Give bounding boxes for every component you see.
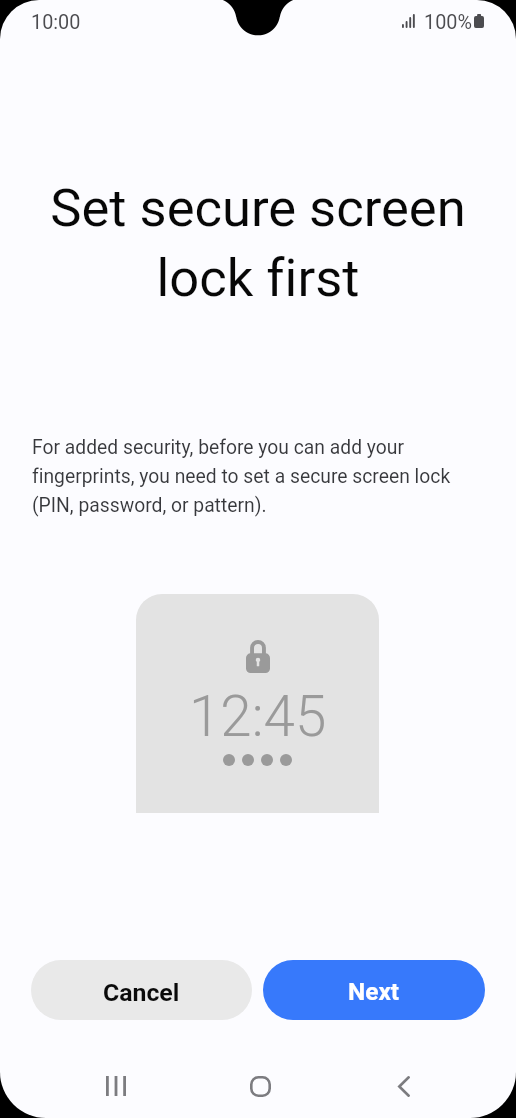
button[interactable]: Back (332, 1054, 476, 1118)
staticText: Next (348, 977, 400, 1006)
button[interactable]: Cancel (31, 960, 252, 1020)
staticText: Cancel (103, 978, 180, 1007)
staticText: 10:00 (31, 11, 81, 34)
button[interactable]: Recent apps (43, 1054, 188, 1118)
staticText: 100% (424, 11, 472, 34)
button[interactable]: Home (188, 1054, 332, 1118)
staticText: For added security, before you can add y… (32, 436, 464, 517)
button[interactable]: Next (263, 960, 485, 1020)
staticText: Set secure screen lock first (0, 177, 516, 309)
staticText: 12:45 (189, 684, 327, 750)
